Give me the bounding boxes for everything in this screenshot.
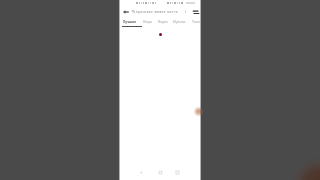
button[interactable]: Лучшие xyxy=(123,18,137,25)
button[interactable]: Тема xyxy=(192,18,200,25)
staticText: Музыка xyxy=(173,20,186,24)
button[interactable]: Filter xyxy=(192,8,200,16)
button[interactable]: Видео xyxy=(158,18,168,25)
button[interactable]: Recents xyxy=(173,168,181,176)
staticText: Тема xyxy=(192,20,200,24)
button[interactable]: Люди xyxy=(143,18,152,25)
button[interactable]: красивое живое место xyxy=(132,7,190,16)
staticText: красивое живое место xyxy=(136,10,178,14)
staticText: Лучшие xyxy=(123,20,137,24)
button[interactable]: Back xyxy=(137,168,145,176)
button[interactable]: Home xyxy=(156,168,164,176)
button[interactable]: Музыка xyxy=(173,18,186,25)
staticText: Видео xyxy=(158,20,168,24)
staticText: Люди xyxy=(143,20,152,24)
button[interactable]: Back xyxy=(122,8,130,16)
